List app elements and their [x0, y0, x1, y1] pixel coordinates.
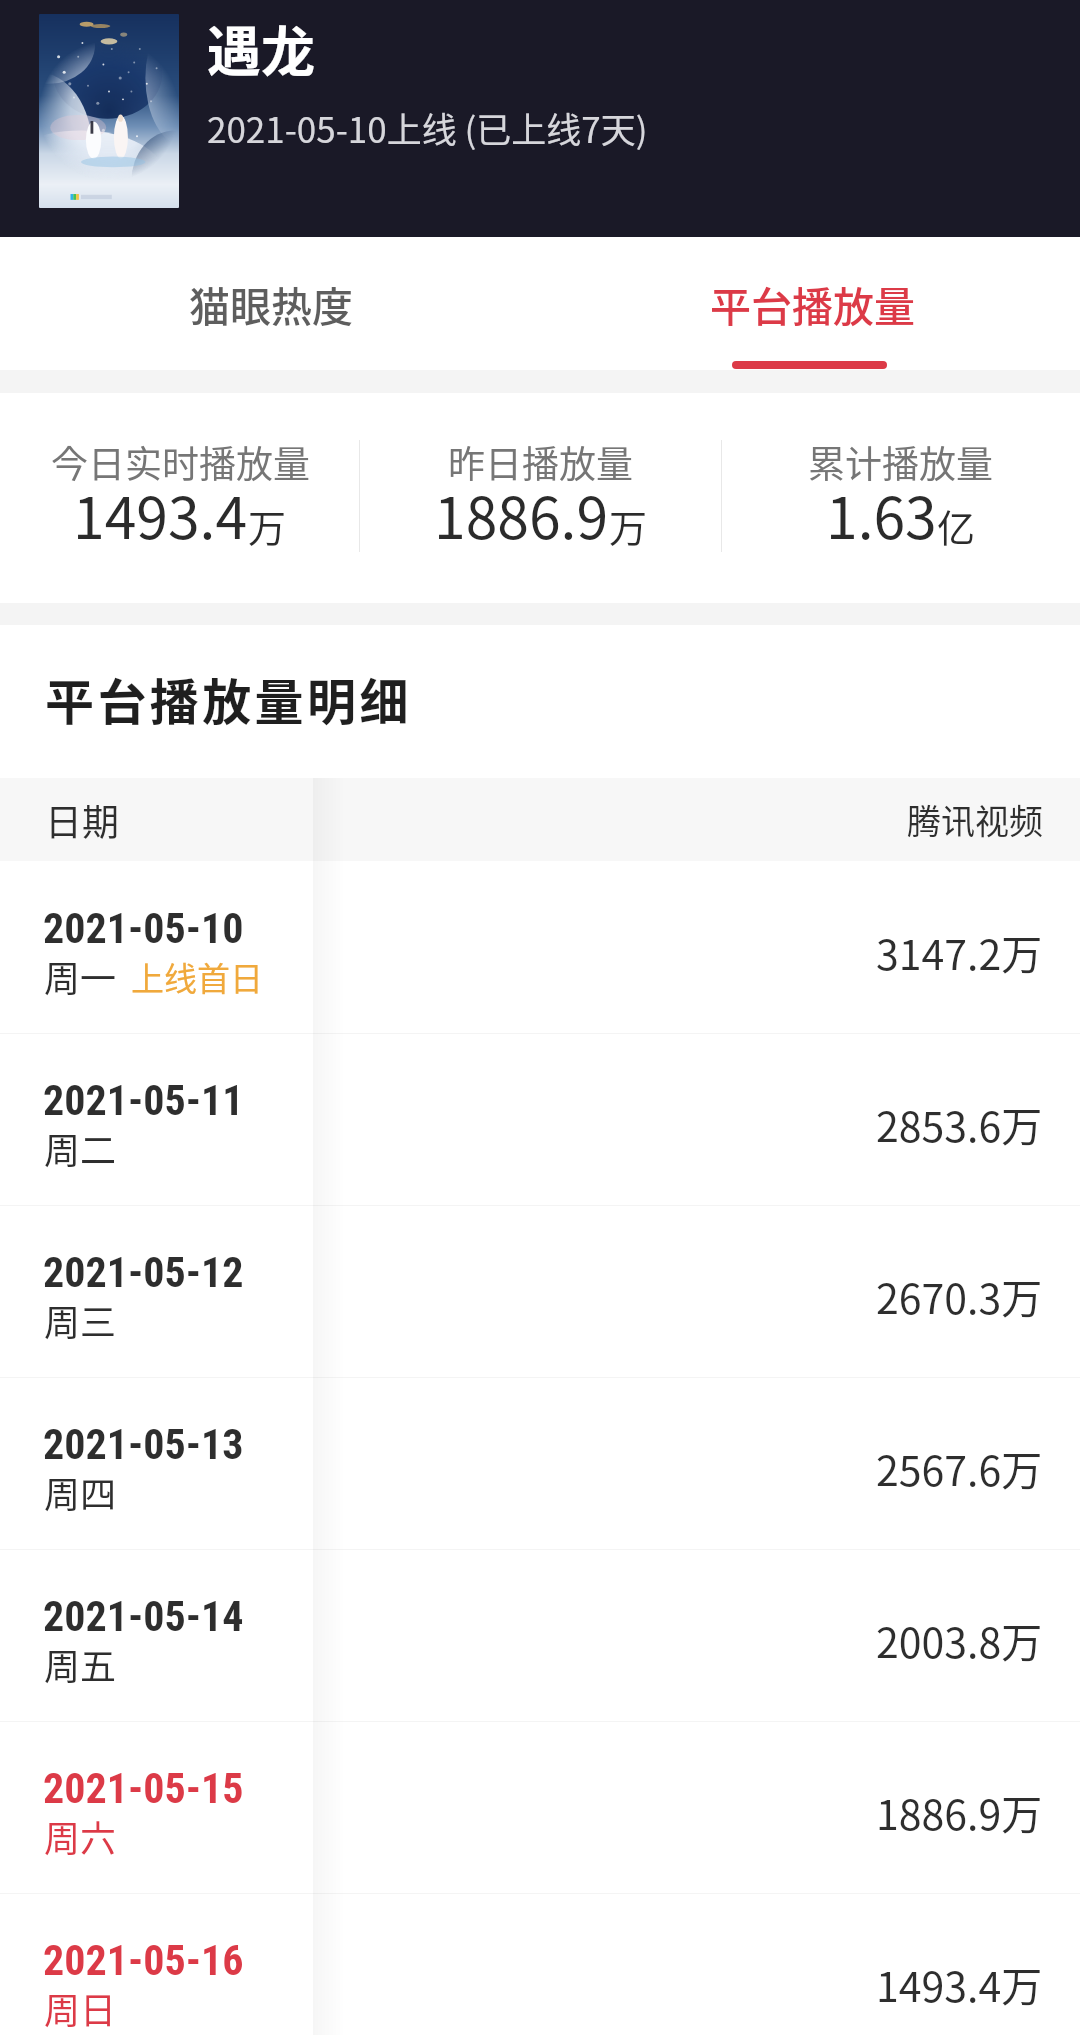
staticText: 2670.3万	[876, 1266, 1043, 1325]
staticText: 1886.9万	[876, 1782, 1043, 1841]
button[interactable]: 猫眼热度	[0, 237, 540, 370]
staticText: 猫眼热度	[189, 274, 353, 333]
staticText: 腾讯视频	[907, 795, 1043, 844]
staticText: 今日实时播放量	[51, 435, 310, 489]
staticText: 2021-05-15	[43, 1764, 244, 1813]
staticText: 2003.8万	[876, 1610, 1043, 1669]
staticText: 1493.4	[73, 473, 248, 556]
staticText: 万	[609, 498, 648, 553]
staticText: 2021-05-12	[43, 1248, 244, 1297]
staticText: 2021-05-10上线 (已上线7天)	[207, 102, 648, 153]
staticText: 3147.2万	[876, 922, 1043, 981]
staticText: 亿	[937, 498, 976, 553]
staticText: 周四	[44, 1466, 117, 1518]
staticText: 周日	[44, 1982, 117, 2034]
staticText: 日期	[45, 793, 119, 847]
staticText: 2853.6万	[876, 1094, 1043, 1153]
button[interactable]: 2021-05-12	[0, 1205, 1080, 1377]
staticText: 1886.9	[434, 473, 609, 556]
staticText: 周二	[44, 1122, 117, 1174]
staticText: 1493.4万	[876, 1954, 1043, 2013]
staticText: 累计播放量	[808, 435, 993, 489]
button[interactable]: 2021-05-10	[0, 861, 1080, 1033]
staticText: 周一	[44, 950, 117, 1002]
staticText: 周六	[44, 1810, 117, 1862]
staticText: 平台播放量	[710, 274, 915, 333]
button[interactable]: 2021-05-11	[0, 1033, 1080, 1205]
staticText: 遇龙	[207, 9, 315, 87]
staticText: 昨日播放量	[448, 435, 633, 489]
staticText: 2021-05-14	[43, 1592, 244, 1641]
button[interactable]: 2021-05-13	[0, 1377, 1080, 1549]
staticText: 2021-05-10	[43, 904, 244, 953]
staticText: 周三	[44, 1294, 117, 1346]
staticText: 2567.6万	[876, 1438, 1043, 1497]
button[interactable]: 2021-05-15	[0, 1721, 1080, 1893]
staticText: 1.63	[826, 473, 937, 556]
staticText: 平台播放量明细	[45, 663, 412, 734]
staticText: 上线首日	[131, 953, 263, 1001]
staticText: 2021-05-13	[43, 1420, 244, 1469]
button[interactable]: 遇龙 海报	[39, 14, 179, 208]
button[interactable]: 平台播放量	[540, 237, 1080, 370]
staticText: 万	[248, 498, 287, 553]
staticText: 2021-05-11	[43, 1076, 244, 1125]
staticText: 2021-05-16	[43, 1936, 244, 1985]
staticText: 周五	[44, 1638, 117, 1690]
button[interactable]: 2021-05-14	[0, 1549, 1080, 1721]
button[interactable]: 2021-05-16	[0, 1893, 1080, 2035]
